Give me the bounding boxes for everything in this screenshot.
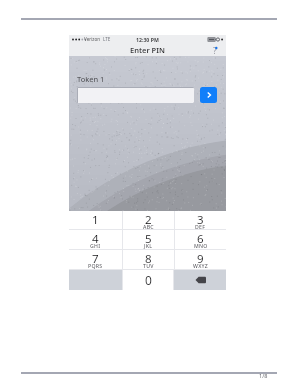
staticText: 6 <box>197 231 204 247</box>
staticText: DEF <box>195 223 206 230</box>
button[interactable]: 8 <box>123 250 174 269</box>
button[interactable]: Help <box>208 43 226 56</box>
staticText: TUV <box>143 262 154 269</box>
staticText: 1 <box>92 212 99 228</box>
staticText: MNO <box>194 242 208 249</box>
button[interactable]: 5 <box>123 230 174 249</box>
button[interactable]: 1 <box>69 211 122 229</box>
staticText: 0 <box>145 272 152 288</box>
staticText: 7 <box>92 251 99 267</box>
button[interactable]: 3 <box>175 211 226 229</box>
staticText: 4 <box>92 231 99 247</box>
button[interactable]: 9 <box>175 250 226 269</box>
staticText: Enter PIN <box>130 45 165 55</box>
staticText: 8 <box>145 251 152 267</box>
button[interactable]: Backspace <box>174 270 226 290</box>
staticText: WXYZ <box>193 262 209 269</box>
button[interactable]: 6 <box>175 230 226 249</box>
staticText: 5 <box>145 231 152 247</box>
staticText: LTE <box>103 36 111 42</box>
staticText: 12:30 PM <box>136 36 159 43</box>
staticText: JKL <box>144 242 153 249</box>
button[interactable]: Submit <box>200 87 217 103</box>
button[interactable]: 7 <box>69 250 122 269</box>
staticText: PQRS <box>88 262 103 269</box>
staticText: 9 <box>197 251 204 267</box>
button[interactable]: 2 <box>123 211 174 229</box>
staticText: Verizon <box>84 36 101 42</box>
staticText: Token 1 <box>77 74 105 84</box>
staticText: GHI <box>90 242 101 249</box>
button[interactable]: 4 <box>69 230 122 249</box>
staticText: 3 <box>197 212 204 228</box>
staticText: ABC <box>143 223 154 230</box>
staticText: 2 <box>145 212 152 228</box>
button[interactable]: 0 <box>123 270 173 290</box>
staticText: ? <box>213 45 217 54</box>
staticText: 1/8 <box>259 372 268 379</box>
